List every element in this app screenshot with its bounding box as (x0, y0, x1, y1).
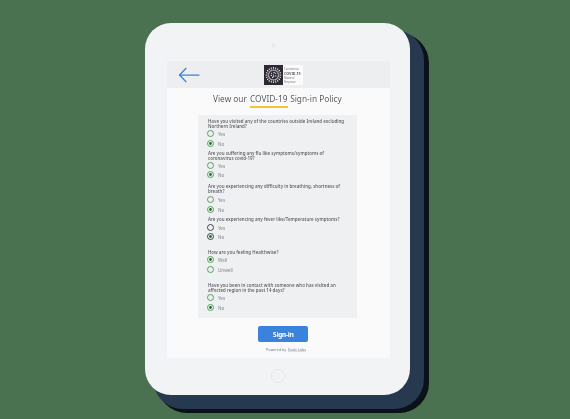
staticText: Are you experiencing any fever like/Temp… (208, 216, 345, 222)
staticText: Unwell (218, 267, 233, 273)
staticText: Evolv Labs (288, 347, 306, 352)
staticText: Are you suffering any flu like symptoms/… (208, 150, 345, 161)
staticText: Coronavirus (284, 67, 299, 71)
button[interactable]: No (207, 205, 257, 214)
staticText: Have you visited any of the countries ou… (208, 118, 345, 129)
button[interactable]: No (207, 232, 257, 241)
button[interactable]: No (207, 303, 257, 312)
button[interactable]: Yes (207, 223, 257, 232)
staticText: View our (213, 93, 250, 104)
staticText: Sign-in (273, 330, 294, 339)
staticText: No (218, 172, 225, 178)
button[interactable]: Back (173, 62, 204, 87)
staticText: How are you feeling Healthwise? (208, 249, 345, 255)
staticText: Yes (218, 225, 226, 231)
staticText: Powered by (266, 347, 288, 352)
staticText: COVID-19 (250, 93, 288, 104)
staticText: Well (218, 257, 228, 263)
button[interactable]: Yes (207, 195, 257, 204)
button[interactable]: Yes (207, 129, 257, 138)
staticText: Yes (218, 197, 226, 203)
staticText: Have you been in contact with someone wh… (208, 282, 345, 293)
staticText: National (284, 76, 295, 80)
staticText: COVID-19 (284, 71, 301, 76)
button[interactable]: Sign-in (258, 326, 308, 342)
button[interactable]: Yes (207, 161, 257, 170)
button[interactable]: No (207, 170, 257, 179)
staticText: Sign-in Policy (288, 93, 342, 104)
staticText: No (218, 141, 225, 147)
staticText: Yes (218, 163, 226, 169)
staticText: Response (284, 80, 296, 84)
button[interactable]: Unwell (207, 265, 257, 274)
staticText: Yes (218, 131, 226, 137)
button[interactable]: No (207, 139, 257, 148)
staticText: Yes (218, 295, 226, 301)
button[interactable]: Powered by (266, 347, 306, 352)
staticText: No (218, 305, 225, 311)
staticText: No (218, 207, 225, 213)
staticText: No (218, 234, 225, 240)
button[interactable]: Well (207, 255, 257, 264)
staticText: Are you experiencing any difficulty in b… (208, 183, 345, 194)
button[interactable]: Yes (207, 293, 257, 302)
